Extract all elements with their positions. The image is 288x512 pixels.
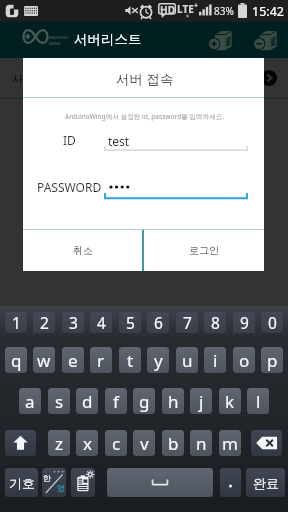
staticText: ID xyxy=(63,132,76,148)
staticText: WING xyxy=(49,41,61,46)
staticText: q xyxy=(11,349,22,372)
button[interactable]: s xyxy=(48,388,70,414)
button[interactable]: Space xyxy=(107,468,213,497)
button[interactable]: 4 xyxy=(90,312,112,333)
staticText: u xyxy=(182,349,193,372)
button[interactable]: 7 xyxy=(176,312,198,333)
button[interactable]: g xyxy=(133,388,155,414)
button[interactable]: Korean English toggle xyxy=(42,468,66,497)
staticText: o xyxy=(239,349,250,372)
button[interactable]: t xyxy=(119,347,141,373)
staticText: 취소 xyxy=(73,244,93,257)
button[interactable]: 취소 xyxy=(23,230,142,271)
staticText: 83% xyxy=(214,4,234,18)
staticText: 0 xyxy=(268,312,277,333)
button[interactable]: n xyxy=(190,430,212,456)
button[interactable]: a xyxy=(19,388,41,414)
button[interactable]: i xyxy=(204,347,226,373)
staticText: y xyxy=(154,349,163,372)
staticText: 서버 접속 xyxy=(116,70,174,88)
staticText: c xyxy=(112,432,121,455)
button[interactable]: f xyxy=(105,388,127,414)
staticText: e xyxy=(68,349,78,372)
button[interactable]: 3 xyxy=(62,312,84,333)
button[interactable]: h xyxy=(162,388,184,414)
staticText: PASSWORD xyxy=(37,179,102,195)
staticText: l xyxy=(256,390,261,413)
staticText: 3 xyxy=(69,312,78,333)
button[interactable]: m xyxy=(219,430,241,456)
button[interactable]: 5 xyxy=(119,312,141,333)
button[interactable]: d xyxy=(76,388,98,414)
staticText: 15:42 xyxy=(252,3,284,20)
staticText: 7 xyxy=(183,312,192,333)
button[interactable]: 8 xyxy=(204,312,226,333)
button[interactable]: o xyxy=(233,347,255,373)
staticText: b xyxy=(168,432,179,455)
staticText: a xyxy=(25,390,35,413)
staticText: z xyxy=(55,432,63,455)
button[interactable]: 사용자 서버 xyxy=(0,58,288,98)
button[interactable]: r xyxy=(90,347,112,373)
staticText: v xyxy=(140,432,149,455)
staticText: ArduinoWing에서 설정한 id, password를 입력하세요. xyxy=(65,112,225,121)
staticText: HD xyxy=(160,3,175,17)
button[interactable]: Clipboard xyxy=(71,468,95,497)
staticText: 2 xyxy=(40,312,49,333)
button[interactable]: e xyxy=(62,347,84,373)
staticText: h xyxy=(168,390,179,413)
button[interactable]: j xyxy=(190,388,212,414)
staticText: test xyxy=(108,133,130,149)
staticText: 서버리스트 xyxy=(74,31,142,48)
button[interactable]: 6 xyxy=(147,312,169,333)
button[interactable]: 완료 xyxy=(246,468,285,497)
staticText: 1 xyxy=(12,312,21,333)
staticText: 9 xyxy=(240,312,249,333)
button[interactable]: Add server xyxy=(200,22,240,58)
staticText: d xyxy=(82,390,93,413)
staticText: j xyxy=(199,390,204,413)
button[interactable]: Period xyxy=(220,468,241,497)
staticText: f xyxy=(113,390,119,413)
staticText: n xyxy=(196,432,207,455)
button[interactable]: z xyxy=(48,430,70,456)
staticText: 6 xyxy=(154,312,163,333)
staticText: g xyxy=(139,390,150,413)
button[interactable]: x xyxy=(76,430,98,456)
button[interactable]: 기호 xyxy=(5,468,38,497)
staticText: i xyxy=(213,349,218,372)
button[interactable]: 0 xyxy=(261,312,283,333)
button[interactable]: w xyxy=(33,347,55,373)
staticText: + xyxy=(194,1,199,11)
button[interactable]: q xyxy=(5,347,27,373)
button[interactable]: y xyxy=(147,347,169,373)
staticText: 4 xyxy=(97,312,106,333)
button[interactable]: Shift xyxy=(5,430,36,456)
button[interactable]: 9 xyxy=(233,312,255,333)
button[interactable]: 2 xyxy=(33,312,55,333)
staticText: LTE xyxy=(177,2,194,16)
staticText: 로그인 xyxy=(189,244,219,257)
button[interactable]: b xyxy=(162,430,184,456)
button[interactable]: Remove server xyxy=(245,22,285,58)
button[interactable]: 1 xyxy=(5,312,27,333)
staticText: r xyxy=(97,349,105,372)
staticText: p xyxy=(267,349,278,372)
staticText: 5 xyxy=(126,312,135,333)
button[interactable]: 로그인 xyxy=(144,230,264,271)
staticText: t xyxy=(127,349,134,372)
staticText: 기호 xyxy=(9,475,35,491)
button[interactable]: u xyxy=(176,347,198,373)
button[interactable]: p xyxy=(261,347,283,373)
button[interactable]: v xyxy=(133,430,155,456)
button[interactable]: k xyxy=(219,388,241,414)
staticText: x xyxy=(83,432,92,455)
button[interactable]: Backspace xyxy=(251,430,282,456)
staticText: s xyxy=(55,390,64,413)
staticText: m xyxy=(222,432,238,455)
button[interactable]: c xyxy=(105,430,127,456)
staticText: w xyxy=(37,349,51,372)
staticText: 한 xyxy=(43,473,51,483)
staticText: 완료 xyxy=(253,475,279,491)
button[interactable]: l xyxy=(247,388,269,414)
